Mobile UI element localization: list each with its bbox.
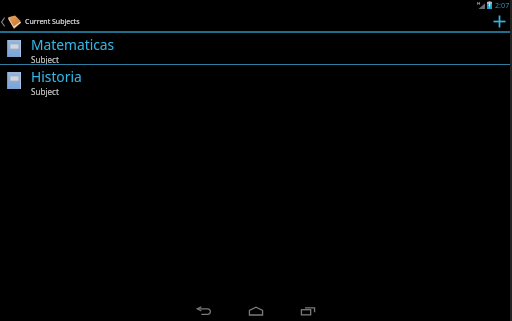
staticText: Subject	[31, 54, 59, 65]
button[interactable]: Matematicas	[0, 33, 512, 65]
button[interactable]: Up	[0, 15, 80, 29]
button[interactable]: Add subject	[486, 12, 512, 31]
staticText: 2:07	[495, 0, 510, 10]
staticText: Subject	[31, 86, 59, 97]
staticText: Historia	[31, 67, 82, 86]
button[interactable]: Home	[230, 298, 282, 321]
staticText: Matematicas	[31, 35, 115, 54]
button[interactable]: Back	[178, 298, 230, 321]
staticText: Current Subjects	[25, 17, 80, 27]
button[interactable]: Recents	[282, 298, 334, 321]
button[interactable]: Historia	[0, 65, 512, 96]
